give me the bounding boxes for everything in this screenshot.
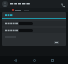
button[interactable]: Call: [59, 1, 66, 8]
button[interactable]: [12, 8, 21, 12]
button[interactable]: OK: [54, 41, 59, 44]
button[interactable]: Back: [12, 57, 19, 64]
button[interactable]: [2, 35, 66, 39]
button[interactable]: Home: [31, 57, 38, 64]
button[interactable]: [2, 28, 66, 33]
button[interactable]: [2, 21, 66, 26]
button[interactable]: Contact photo: [2, 1, 8, 7]
button[interactable]: Recent apps: [49, 57, 56, 64]
